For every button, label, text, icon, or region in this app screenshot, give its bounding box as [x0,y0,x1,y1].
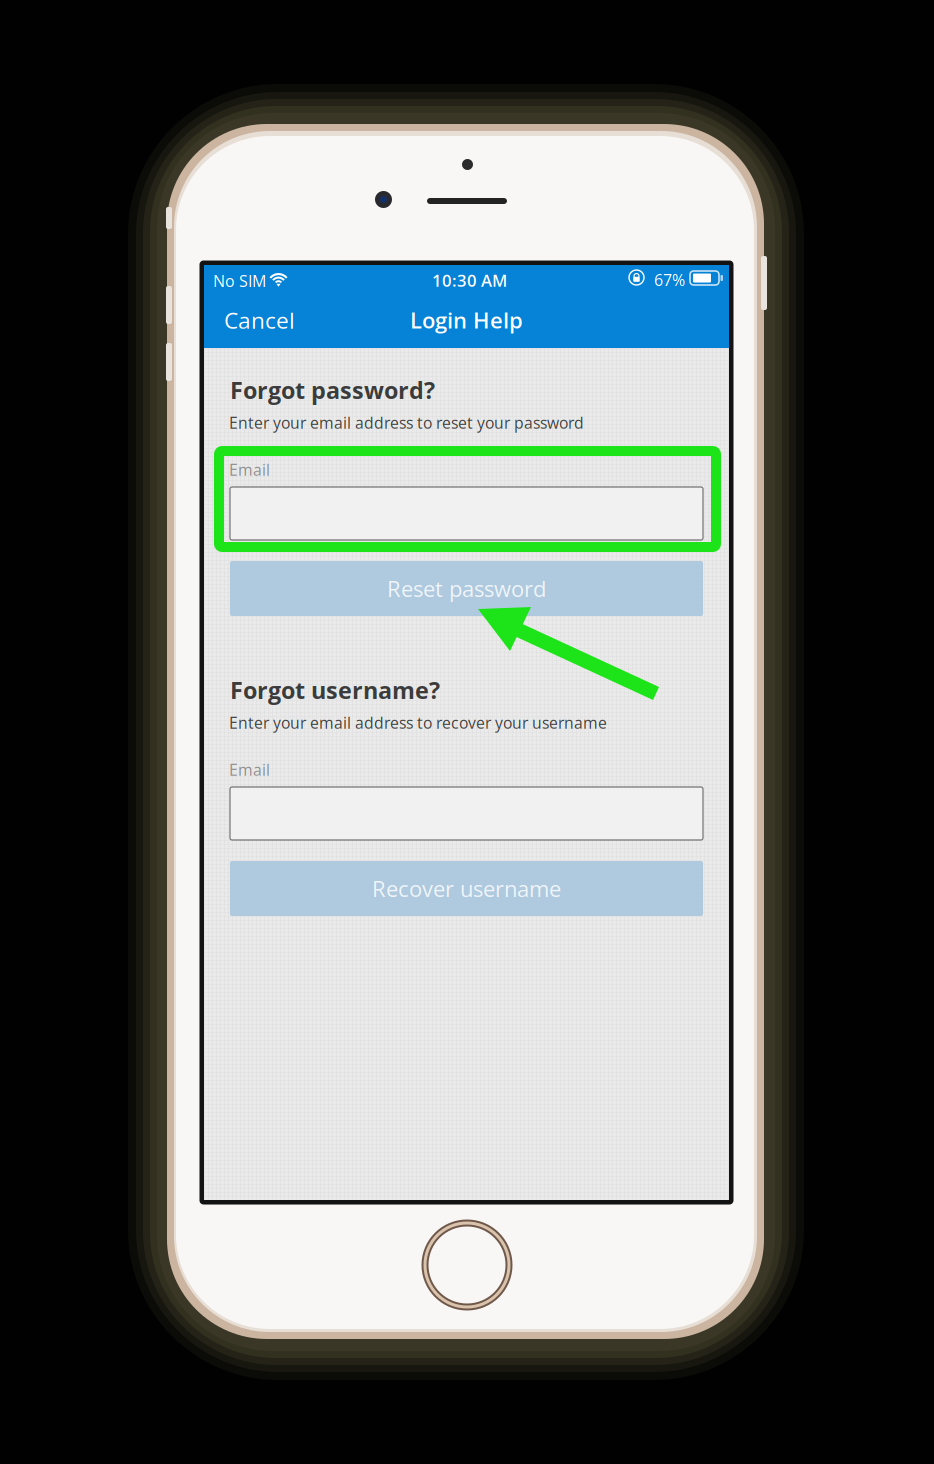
button[interactable]: Recover username [230,861,703,916]
staticText: Enter your email address to reset your p… [229,412,584,433]
staticText: Recover username [372,873,561,903]
staticText: Forgot username? [230,674,440,706]
staticText: 67% [654,269,685,291]
staticText: Cancel [224,305,295,335]
staticText: Email [229,459,270,480]
staticText: Email [229,759,270,780]
staticText: Login Help [410,305,523,335]
staticText: Reset password [387,573,546,603]
staticText: 10:30 AM [432,269,507,292]
staticText: Enter your email address to recover your… [229,712,607,733]
staticText: No SIM [213,270,266,292]
button[interactable]: Reset password [230,561,703,616]
button[interactable]: Cancel [224,295,334,345]
staticText: Forgot password? [230,374,435,406]
